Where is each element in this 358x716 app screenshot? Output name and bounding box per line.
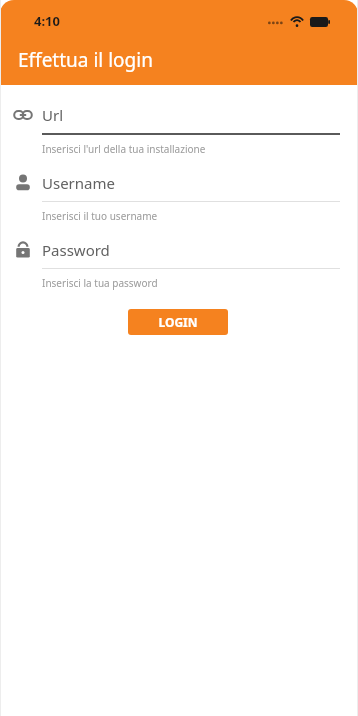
staticText: Effettua il login (18, 47, 153, 73)
button[interactable]: LOGIN (128, 309, 228, 335)
staticText: 4:10 (34, 12, 60, 30)
button[interactable]: Password (0, 232, 358, 299)
other: Password (12, 239, 34, 261)
staticText: Inserisci il tuo username (42, 209, 158, 223)
other: Url (12, 104, 34, 126)
staticText: LOGIN (158, 314, 198, 330)
staticText: Username (42, 173, 115, 193)
staticText: Inserisci l'url della tua installazione (42, 142, 206, 156)
button[interactable]: Username (0, 165, 358, 232)
staticText: Password (42, 240, 110, 260)
staticText: Url (42, 105, 64, 125)
other: Username (12, 172, 34, 194)
button[interactable]: Url (0, 97, 358, 165)
staticText: Inserisci la tua password (42, 276, 158, 290)
